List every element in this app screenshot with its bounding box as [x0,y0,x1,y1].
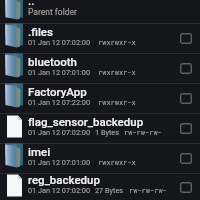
staticText: .files [28,25,53,38]
staticText: imei [28,145,51,158]
staticText: rwxrwxr-x [98,38,136,47]
staticText: 01 Jan 12 07:02:00 [28,128,90,137]
staticText: reg_backedup [28,173,100,186]
staticText: .. [28,0,35,7]
staticText: rwxrwxr-x [98,158,136,167]
button[interactable]: flag_sensor_backedup [0,114,200,143]
staticText: FactoryApp [28,85,87,98]
button[interactable]: .. [0,0,200,23]
staticText: 01 Jan 12 07:02:00 [28,38,90,47]
staticText: 01 Jan 12 07:22:00 [28,98,90,107]
button[interactable]: Select bluetooth [172,54,200,83]
button[interactable]: Select flag_sensor_backedup [172,114,200,143]
button[interactable]: bluetooth [0,54,200,83]
button[interactable]: .files [0,24,200,53]
staticText: 27 Bytes [95,186,124,195]
staticText: 01 Jan 12 07:01:00 [28,158,90,167]
staticText: bluetooth [28,55,77,68]
button[interactable]: imei [0,144,200,173]
staticText: flag_sensor_backedup [28,115,144,128]
staticText: rw-rw-rw- [124,128,162,137]
button[interactable]: Select FactoryApp [172,84,200,113]
staticText: rw-rw-rw- [129,186,167,195]
button[interactable]: Select .files [172,24,200,53]
staticText: rwxrwxr-x [98,68,136,77]
staticText: rwxrwxr-x [98,98,136,107]
staticText: 1 Bytes [95,128,119,137]
staticText: Parent folder [28,7,77,17]
button[interactable]: Select reg_backedup [172,174,200,200]
button[interactable]: Select imei [172,144,200,173]
button[interactable]: FactoryApp [0,84,200,113]
staticText: 01 Jan 12 07:01:00 [28,68,90,77]
staticText: 01 Jan 12 07:02:00 [28,186,90,195]
button[interactable]: reg_backedup [0,174,200,200]
